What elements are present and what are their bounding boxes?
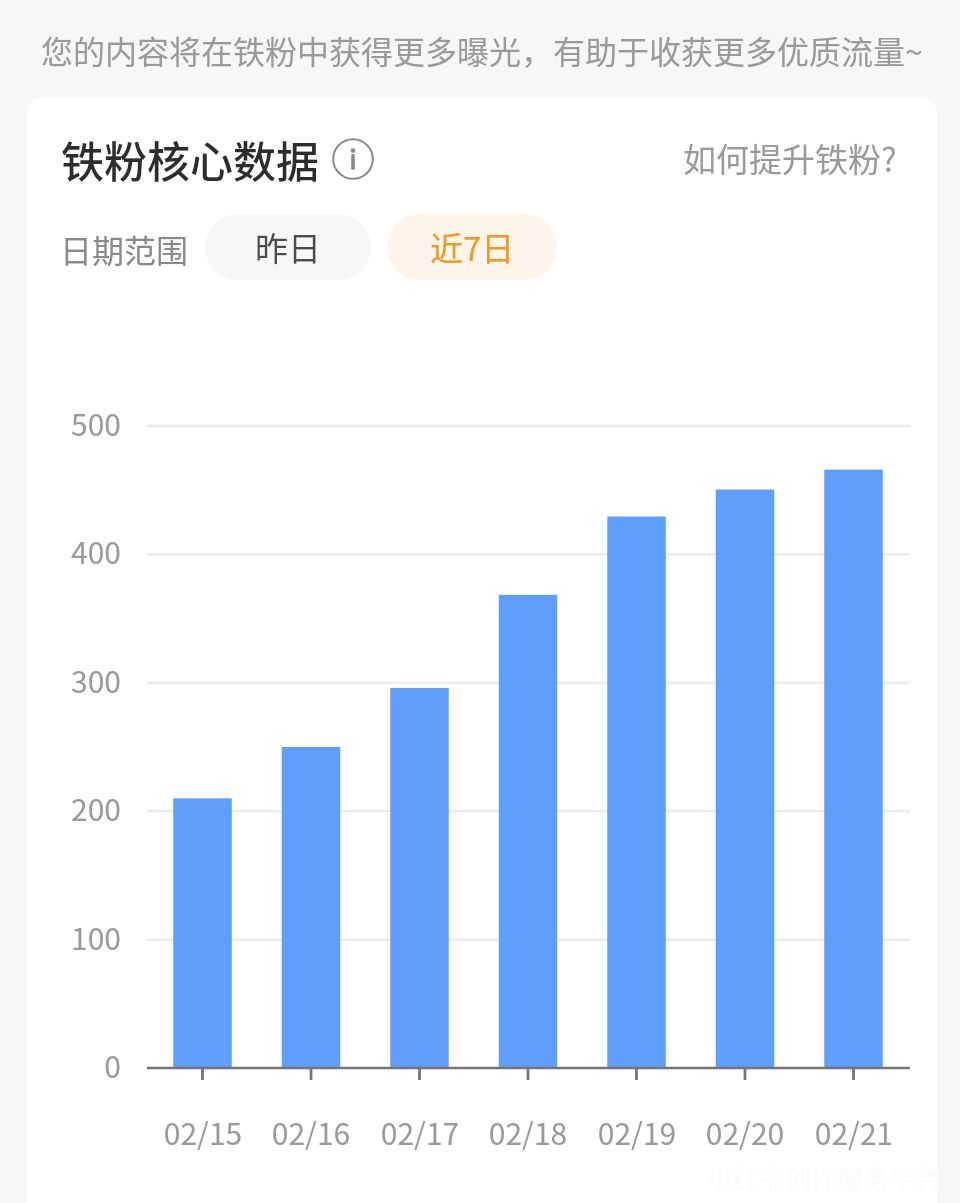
staticText: 日期范围 bbox=[60, 226, 189, 272]
staticText: 02/18 bbox=[468, 1110, 588, 1153]
staticText: 500 bbox=[27, 401, 121, 444]
staticText: 02/17 bbox=[360, 1110, 480, 1153]
staticText: 02/15 bbox=[143, 1110, 263, 1153]
button[interactable]: 如何提升铁粉? bbox=[683, 134, 897, 182]
staticText: 昨日 bbox=[255, 223, 321, 271]
staticText: 如何提升铁粉? bbox=[683, 134, 897, 182]
staticText: 100 bbox=[27, 915, 121, 958]
staticText: 200 bbox=[27, 786, 121, 829]
staticText: 300 bbox=[27, 658, 121, 701]
button[interactable]: 近7日 bbox=[387, 214, 557, 280]
button[interactable]: 昨日 bbox=[205, 214, 371, 280]
staticText: 02/21 bbox=[794, 1110, 914, 1153]
staticText: 您的内容将在铁粉中获得更多曝光，有助于收获更多优质流量~ bbox=[41, 27, 923, 73]
staticText: 02/19 bbox=[577, 1110, 697, 1153]
staticText: 400 bbox=[27, 529, 121, 572]
staticText: 铁粉核心数据 bbox=[61, 128, 319, 190]
staticText: 02/16 bbox=[251, 1110, 371, 1153]
staticText: 0 bbox=[27, 1043, 121, 1086]
staticText: 02/20 bbox=[685, 1110, 805, 1153]
staticText: 近7日 bbox=[430, 223, 515, 271]
button[interactable]: 指标说明 bbox=[332, 138, 374, 180]
